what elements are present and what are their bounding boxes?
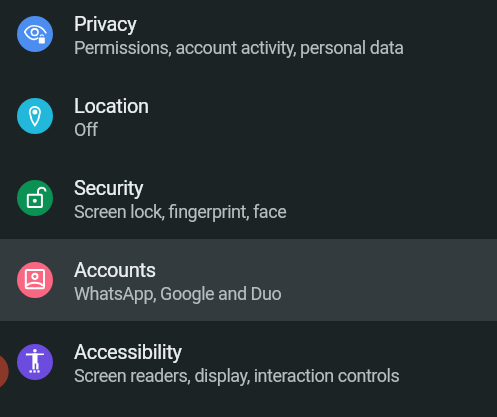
- staticText: Off: [74, 119, 98, 140]
- button[interactable]: Accounts: [0, 239, 497, 321]
- staticText: Accounts: [74, 258, 156, 281]
- staticText: Accessibility: [74, 340, 182, 363]
- button[interactable]: Accessibility: [0, 321, 497, 403]
- button[interactable]: Security: [0, 157, 497, 239]
- staticText: WhatsApp, Google and Duo: [74, 283, 282, 304]
- button[interactable]: Privacy: [0, 0, 497, 75]
- staticText: Screen readers, display, interaction con…: [74, 365, 400, 386]
- staticText: Location: [74, 94, 149, 117]
- staticText: Security: [74, 176, 144, 199]
- button[interactable]: Location: [0, 75, 497, 157]
- staticText: Screen lock, fingerprint, face: [74, 201, 287, 222]
- staticText: Privacy: [74, 12, 137, 35]
- staticText: Permissions, account activity, personal …: [74, 37, 404, 58]
